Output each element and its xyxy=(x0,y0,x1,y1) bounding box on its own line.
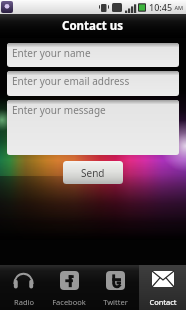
staticText: Twitter xyxy=(103,297,128,307)
staticText: 10:45 xyxy=(149,1,173,13)
staticText: Contact xyxy=(149,297,177,307)
button[interactable]: Facebook xyxy=(46,265,92,310)
staticText: Enter your message xyxy=(12,103,106,117)
staticText: Enter your email address xyxy=(12,74,130,88)
button[interactable]: Enter your email address xyxy=(7,71,179,96)
button[interactable]: Radio xyxy=(0,265,46,310)
button[interactable]: Send xyxy=(63,161,123,184)
staticText: Send xyxy=(81,166,105,180)
button[interactable]: Enter your message xyxy=(7,100,179,155)
staticText: Contact us xyxy=(62,18,124,34)
staticText: Facebook xyxy=(52,297,86,307)
staticText: Radio xyxy=(14,297,34,307)
staticText: Enter your name xyxy=(12,46,91,60)
button[interactable]: Twitter xyxy=(92,265,139,310)
button[interactable]: Contact xyxy=(139,265,186,310)
button[interactable]: Enter your name xyxy=(7,43,179,67)
staticText: AM xyxy=(173,4,184,11)
